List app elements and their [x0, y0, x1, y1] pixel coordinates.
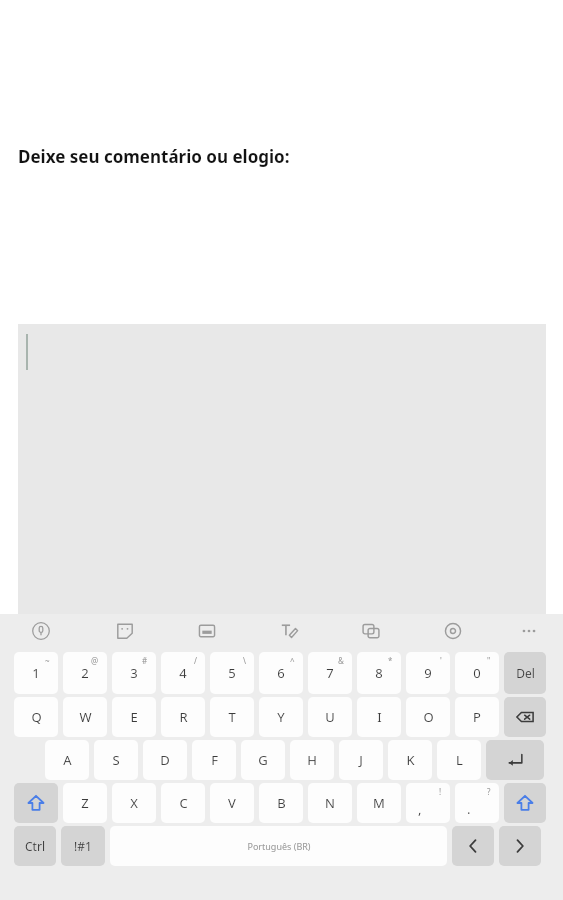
button[interactable]: P [455, 697, 499, 737]
button[interactable]: Del [504, 652, 546, 694]
button[interactable]: K [388, 740, 432, 780]
staticText: ^ [290, 655, 295, 666]
button[interactable]: Voice input [24, 614, 58, 648]
button[interactable]: Z [63, 783, 107, 823]
button[interactable]: 4 [161, 652, 205, 694]
button[interactable]: A [45, 740, 89, 780]
button[interactable]: 6 [259, 652, 303, 694]
staticText: @ [91, 655, 99, 666]
button[interactable]: Shift [504, 783, 546, 823]
button[interactable]: 9 [406, 652, 450, 694]
button[interactable]: Next [499, 826, 541, 866]
staticText: 8 [375, 664, 383, 682]
staticText: R [179, 708, 188, 726]
button[interactable]: 1 [14, 652, 58, 694]
staticText: # [142, 655, 148, 666]
button[interactable]: E [112, 697, 156, 737]
staticText: S [112, 751, 120, 769]
staticText: 4 [179, 664, 187, 682]
button[interactable]: D [143, 740, 187, 780]
button[interactable]: S [94, 740, 138, 780]
button[interactable]: 5 [210, 652, 254, 694]
staticText: O [423, 708, 434, 726]
staticText: * [388, 655, 393, 666]
button[interactable]: G [241, 740, 285, 780]
button[interactable]: More options [512, 614, 546, 648]
staticText: D [160, 751, 170, 769]
staticText: 6 [277, 664, 285, 682]
button[interactable]: Handwriting [272, 614, 306, 648]
staticText: " [487, 655, 491, 666]
button[interactable]: V [210, 783, 254, 823]
button[interactable]: Enter [486, 740, 544, 780]
staticText: ? [487, 786, 491, 797]
button[interactable]: Backspace [504, 697, 546, 737]
button[interactable]: R [161, 697, 205, 737]
button[interactable]: 0 [455, 652, 499, 694]
staticText: A [63, 751, 72, 769]
staticText: W [79, 708, 92, 726]
staticText: 3 [130, 664, 138, 682]
button[interactable]: J [339, 740, 383, 780]
button[interactable]: Clipboard [190, 614, 224, 648]
staticText: / [194, 655, 197, 666]
staticText: ~ [45, 655, 50, 666]
button[interactable]: L [437, 740, 481, 780]
button[interactable]: N [308, 783, 352, 823]
button[interactable]: F [192, 740, 236, 780]
staticText: I [377, 708, 382, 726]
staticText: 7 [326, 664, 334, 682]
button[interactable]: U [308, 697, 352, 737]
button[interactable]: H [290, 740, 334, 780]
staticText: ' [440, 655, 442, 666]
staticText: X [130, 794, 138, 812]
button[interactable]: Shift [14, 783, 58, 823]
staticText: Y [277, 708, 285, 726]
button[interactable]: I [357, 697, 401, 737]
button[interactable]: Previous [452, 826, 494, 866]
staticText: P [473, 708, 481, 726]
staticText: T [228, 708, 236, 726]
staticText: , [418, 800, 422, 818]
staticText: V [228, 794, 236, 812]
button[interactable]: M [357, 783, 401, 823]
staticText: K [406, 751, 415, 769]
button[interactable]: T [210, 697, 254, 737]
button[interactable]: Settings [436, 614, 470, 648]
button[interactable]: C [161, 783, 205, 823]
button[interactable]: O [406, 697, 450, 737]
staticText: 5 [228, 664, 236, 682]
staticText: E [130, 708, 138, 726]
button[interactable]: Translate [354, 614, 388, 648]
staticText: Deixe seu comentário ou elogio: [18, 145, 290, 168]
button[interactable]: W [63, 697, 107, 737]
button[interactable]: Y [259, 697, 303, 737]
button[interactable]: X [112, 783, 156, 823]
staticText: U [325, 708, 335, 726]
button[interactable]: Q [14, 697, 58, 737]
button[interactable]: Português (BR) [110, 826, 447, 866]
button[interactable]: . [455, 783, 499, 823]
button[interactable]: 7 [308, 652, 352, 694]
button[interactable]: 2 [63, 652, 107, 694]
staticText: H [307, 751, 317, 769]
staticText: 0 [473, 664, 481, 682]
staticText: ! [439, 786, 442, 797]
staticText: Del [516, 665, 535, 681]
button[interactable]: , [406, 783, 450, 823]
staticText: 9 [424, 664, 432, 682]
staticText: F [211, 751, 218, 769]
staticText: 1 [32, 664, 40, 682]
button[interactable]: Stickers [108, 614, 142, 648]
staticText: N [325, 794, 335, 812]
staticText: Português (BR) [247, 840, 311, 852]
staticText: \ [243, 655, 246, 666]
button[interactable]: 3 [112, 652, 156, 694]
button[interactable]: 8 [357, 652, 401, 694]
button[interactable]: B [259, 783, 303, 823]
staticText: Q [31, 708, 42, 726]
button[interactable]: Ctrl [14, 826, 56, 866]
button[interactable]: !#1 [61, 826, 105, 866]
staticText: G [258, 751, 268, 769]
